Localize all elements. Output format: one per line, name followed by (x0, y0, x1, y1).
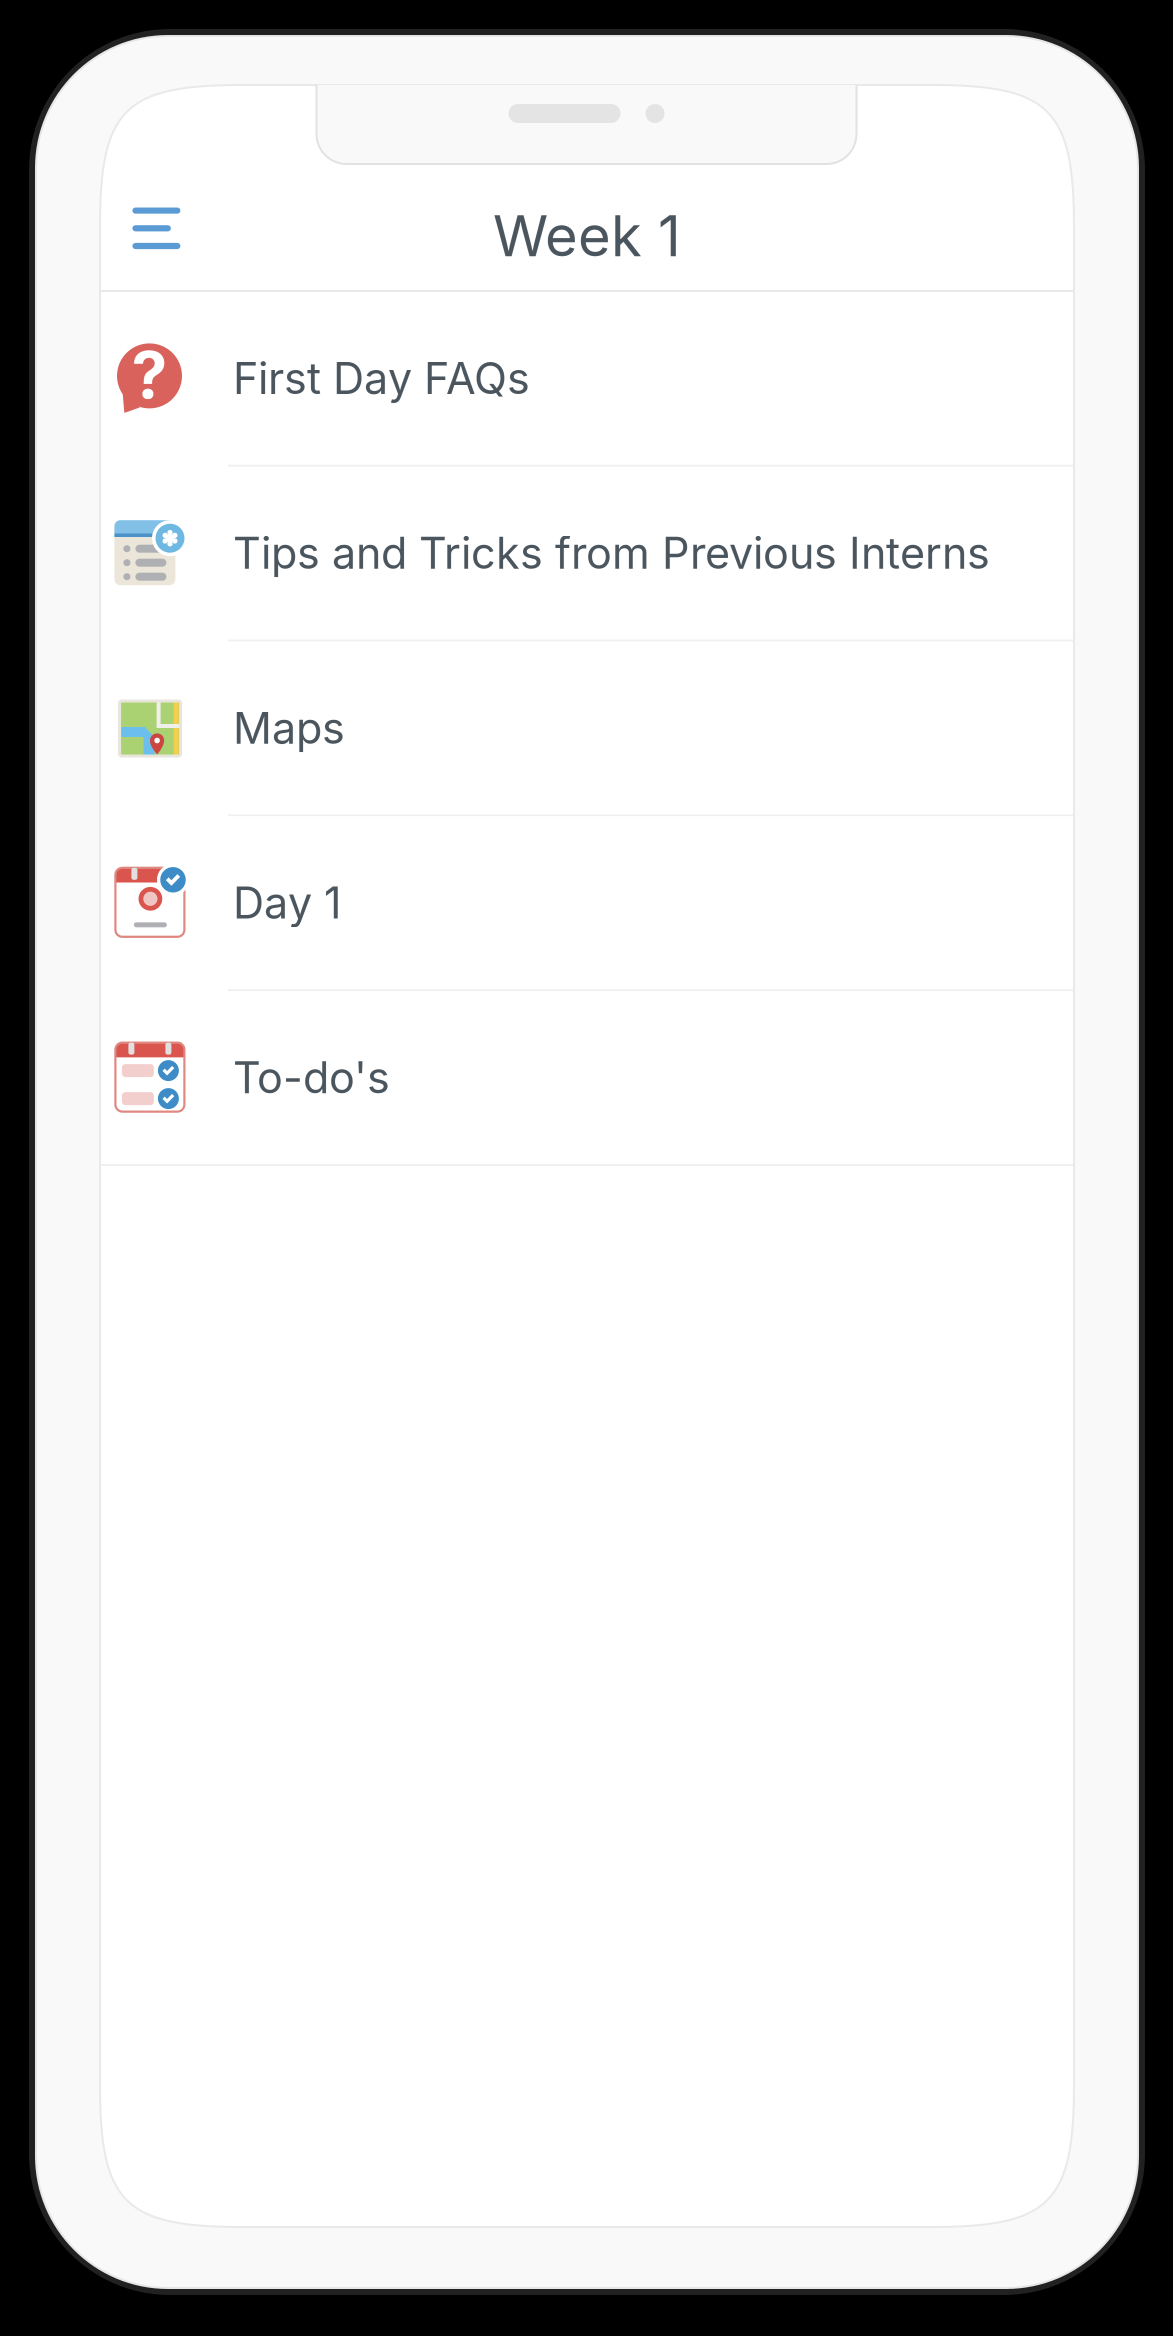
staticText: To-do's (233, 1051, 390, 1104)
staticText: ? (131, 336, 167, 414)
staticText: Tips and Tricks from Previous Interns (233, 527, 990, 579)
button[interactable]: Menu (110, 182, 202, 274)
button[interactable]: To-do's (100, 991, 1074, 1166)
staticText: Day 1 (233, 877, 342, 929)
staticText: Week 1 (493, 202, 681, 270)
button[interactable]: Day 1 (100, 816, 1074, 991)
staticText: First Day FAQs (233, 352, 530, 404)
staticText: Maps (233, 702, 345, 754)
button[interactable]: Tips and Tricks from Previous Interns (100, 467, 1074, 642)
button[interactable]: Maps (100, 642, 1074, 816)
button[interactable]: ? (100, 292, 1074, 467)
